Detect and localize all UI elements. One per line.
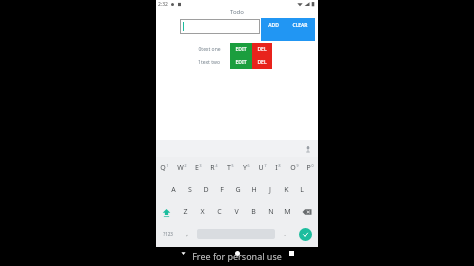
staticText: 8 bbox=[278, 163, 281, 168]
button[interactable]: Z bbox=[177, 201, 194, 223]
staticText: E bbox=[195, 163, 199, 173]
button[interactable]: M bbox=[279, 201, 296, 223]
button[interactable]: Q bbox=[156, 157, 173, 179]
staticText: Todo bbox=[230, 8, 244, 15]
button[interactable]: Shift bbox=[156, 201, 177, 223]
button[interactable]: C bbox=[211, 201, 228, 223]
staticText: G bbox=[235, 185, 241, 195]
button[interactable]: CLEAR bbox=[285, 18, 315, 41]
staticText: P bbox=[306, 163, 311, 173]
staticText: 0 bbox=[311, 163, 314, 168]
button[interactable]: Y bbox=[238, 157, 254, 179]
staticText: K bbox=[284, 185, 289, 195]
button[interactable]: F bbox=[214, 179, 230, 201]
staticText: EDIT bbox=[235, 59, 247, 66]
button[interactable]: EDIT bbox=[230, 56, 252, 69]
button[interactable]: ADD bbox=[261, 18, 285, 41]
staticText: Z bbox=[183, 207, 188, 217]
staticText: ?123 bbox=[163, 231, 173, 237]
button[interactable]: G bbox=[230, 179, 246, 201]
staticText: T bbox=[227, 163, 231, 173]
button[interactable] bbox=[180, 19, 260, 34]
button[interactable]: O bbox=[286, 157, 302, 179]
staticText: 3 bbox=[199, 163, 202, 168]
button[interactable]: Comma bbox=[179, 223, 195, 245]
button[interactable]: Home bbox=[210, 247, 264, 259]
button[interactable]: I bbox=[270, 157, 286, 179]
staticText: 1 bbox=[166, 163, 169, 168]
staticText: W bbox=[177, 163, 184, 173]
staticText: M bbox=[284, 207, 291, 217]
staticText: S bbox=[188, 185, 192, 195]
button[interactable]: A bbox=[165, 179, 182, 201]
staticText: EDIT bbox=[235, 46, 247, 53]
button[interactable]: ?123 bbox=[156, 223, 179, 245]
button[interactable]: EDIT bbox=[230, 43, 252, 56]
button[interactable]: Back bbox=[156, 247, 210, 259]
staticText: DEL bbox=[257, 46, 267, 53]
staticText: Y bbox=[243, 163, 247, 173]
button[interactable]: K bbox=[278, 179, 294, 201]
button[interactable]: V bbox=[228, 201, 245, 223]
staticText: R bbox=[210, 163, 215, 173]
button[interactable]: Recent apps bbox=[264, 247, 318, 259]
staticText: Free for personal use bbox=[192, 250, 282, 262]
button[interactable]: T bbox=[222, 157, 238, 179]
staticText: U bbox=[258, 163, 264, 173]
button[interactable]: S bbox=[182, 179, 198, 201]
staticText: CLEAR bbox=[292, 22, 308, 29]
button[interactable]: L bbox=[294, 179, 310, 201]
button[interactable]: E bbox=[190, 157, 206, 179]
button[interactable]: P bbox=[302, 157, 318, 179]
button[interactable]: N bbox=[262, 201, 279, 223]
staticText: O bbox=[290, 163, 296, 173]
button[interactable]: D bbox=[198, 179, 214, 201]
staticText: C bbox=[217, 207, 222, 217]
staticText: H bbox=[251, 185, 257, 195]
staticText: 0text one bbox=[198, 46, 221, 53]
staticText: 6 bbox=[247, 163, 250, 168]
button[interactable]: Voice input bbox=[303, 144, 313, 154]
button[interactable]: DEL bbox=[252, 56, 272, 69]
button[interactable]: B bbox=[245, 201, 262, 223]
staticText: V bbox=[234, 207, 239, 217]
staticText: X bbox=[200, 207, 205, 217]
staticText: Q bbox=[160, 163, 166, 173]
button[interactable]: Enter bbox=[293, 223, 318, 245]
staticText: , bbox=[186, 230, 188, 238]
staticText: ADD bbox=[268, 22, 279, 29]
staticText: A bbox=[171, 185, 176, 195]
staticText: J bbox=[269, 185, 271, 195]
button[interactable]: H bbox=[246, 179, 262, 201]
button[interactable]: Backspace bbox=[296, 201, 318, 223]
staticText: D bbox=[203, 185, 209, 195]
button[interactable]: DEL bbox=[252, 43, 272, 56]
button[interactable]: J bbox=[262, 179, 278, 201]
staticText: N bbox=[268, 207, 274, 217]
staticText: 2:32 bbox=[158, 1, 168, 8]
staticText: B bbox=[251, 207, 256, 217]
staticText: 5 bbox=[231, 163, 234, 168]
staticText: DEL bbox=[257, 59, 267, 66]
button[interactable]: X bbox=[194, 201, 211, 223]
staticText: . bbox=[284, 230, 286, 238]
staticText: I bbox=[275, 163, 278, 173]
staticText: L bbox=[300, 185, 304, 195]
button[interactable]: U bbox=[254, 157, 270, 179]
staticText: 7 bbox=[264, 163, 267, 168]
button[interactable]: R bbox=[206, 157, 222, 179]
staticText: 2 bbox=[184, 163, 187, 168]
staticText: 9 bbox=[296, 163, 299, 168]
staticText: 1text two bbox=[198, 59, 220, 66]
staticText: 4 bbox=[215, 163, 218, 168]
staticText: F bbox=[220, 185, 224, 195]
button[interactable]: W bbox=[173, 157, 190, 179]
